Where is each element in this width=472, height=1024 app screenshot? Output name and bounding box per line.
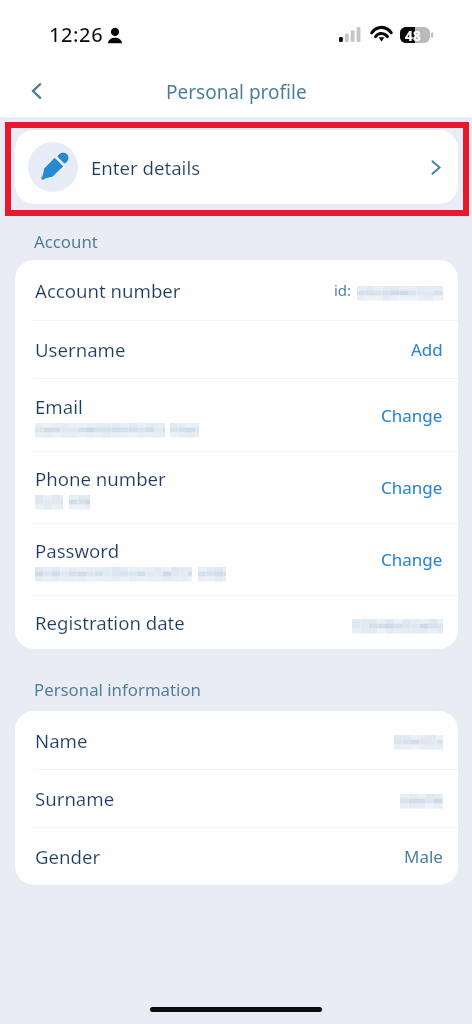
button[interactable]: Password: [15, 524, 458, 595]
staticText: Personal profile: [166, 79, 307, 105]
button[interactable]: Back: [18, 72, 55, 109]
staticText: Password: [35, 538, 120, 563]
staticText: id:: [334, 280, 352, 300]
button[interactable]: Username: [15, 321, 458, 378]
staticText: Enter details: [91, 155, 201, 180]
button[interactable]: Name: [15, 711, 458, 769]
staticText: Phone number: [35, 466, 166, 491]
button[interactable]: Registration date: [15, 596, 458, 649]
staticText: Email: [35, 394, 83, 419]
staticText: Gender: [35, 844, 101, 869]
button[interactable]: Phone number: [15, 452, 458, 523]
staticText: Account number: [35, 278, 181, 303]
staticText: Account: [34, 230, 98, 253]
button[interactable]: Enter details: [15, 130, 458, 204]
staticText: 48: [405, 27, 422, 43]
staticText: Change: [381, 548, 443, 571]
staticText: Change: [381, 404, 443, 427]
button[interactable]: Surname: [15, 770, 458, 827]
staticText: 12:26: [49, 21, 104, 48]
staticText: Surname: [35, 786, 115, 811]
button[interactable]: Gender: [15, 828, 458, 885]
staticText: Registration date: [35, 610, 185, 635]
staticText: Username: [35, 337, 126, 362]
staticText: Male: [404, 845, 443, 868]
button[interactable]: Account number: [15, 260, 458, 320]
staticText: Personal information: [34, 678, 201, 701]
staticText: Add: [411, 338, 443, 361]
button[interactable]: Email: [15, 379, 458, 451]
staticText: Change: [381, 476, 443, 499]
staticText: Name: [35, 728, 88, 753]
